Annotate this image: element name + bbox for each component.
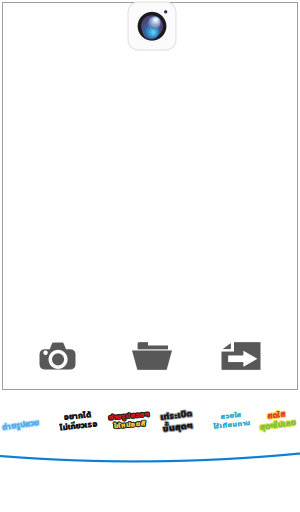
- staticText: สุดๆไปเลย: [258, 420, 294, 432]
- staticText: ให้หน่อยสิ: [113, 418, 145, 429]
- button[interactable]: Take photo: [29, 336, 85, 376]
- staticText: ไร้เทียมทาน: [214, 419, 251, 430]
- staticText: ไร้เทียมทาน: [212, 418, 249, 429]
- staticText: ให้หน่อยสิ: [114, 418, 146, 429]
- staticText: อยากได้: [65, 411, 92, 423]
- staticText: เท่ระเบิด: [160, 407, 192, 421]
- staticText: ไร้เทียมทาน: [214, 420, 251, 431]
- staticText: ไม่เกี่ยวเธอ: [58, 420, 96, 432]
- staticText: เท่ระเบิด: [161, 409, 193, 423]
- staticText: สดใส: [268, 409, 286, 421]
- staticText: ถ่ายรูปสวย: [1, 420, 38, 432]
- staticText: อยากได้: [64, 410, 91, 422]
- staticText: ให้หน่อยสิ: [113, 420, 145, 431]
- staticText: สุดๆไปเลย: [260, 419, 296, 431]
- staticText: ถ่ายรูปสวย: [2, 420, 39, 432]
- staticText: เท่ระเบิด: [160, 408, 192, 422]
- staticText: ให้หน่อยสิ: [113, 420, 145, 431]
- staticText: อยากได้: [64, 409, 91, 421]
- staticText: ให้หน่อยสิ: [113, 418, 145, 429]
- staticText: ขั้นสุดๆ: [163, 420, 193, 434]
- staticText: ถ่ายรูปสวยๆ: [110, 410, 151, 421]
- staticText: สดใส: [268, 408, 286, 420]
- staticText: ถ่ายรูปสวย: [1, 418, 38, 430]
- staticText: เท่ระเบิด: [161, 407, 193, 421]
- staticText: อยากได้: [64, 409, 91, 421]
- button[interactable]: Open album: [124, 336, 180, 376]
- staticText: ถ่ายรูปสวยๆ: [108, 411, 149, 422]
- staticText: สุดๆไปเลย: [258, 419, 294, 431]
- staticText: สุดๆไปเลย: [260, 420, 296, 432]
- staticText: ไร้เทียมทาน: [214, 418, 251, 429]
- staticText: ถ่ายรูปสวย: [3, 418, 40, 430]
- staticText: สุดๆไปเลย: [258, 418, 294, 430]
- staticText: สวยใส: [220, 411, 241, 422]
- staticText: ไร้เทียมทาน: [212, 419, 249, 430]
- staticText: สุดๆไปเลย: [260, 418, 296, 430]
- staticText: ขั้นสุดๆ: [161, 419, 191, 433]
- staticText: ถ่ายรูปสวยๆ: [110, 411, 151, 422]
- staticText: สดใส: [268, 410, 286, 422]
- staticText: สุดๆไปเลย: [259, 420, 295, 432]
- staticText: สวยใส: [221, 411, 242, 422]
- staticText: ไร้เทียมทาน: [212, 420, 249, 431]
- staticText: อยากได้: [64, 411, 91, 423]
- staticText: ไม่เกี่ยวเธอ: [59, 421, 97, 433]
- staticText: ถ่ายรูปสวยๆ: [109, 411, 150, 422]
- staticText: สดใส: [267, 409, 285, 421]
- staticText: ขั้นสุดๆ: [161, 421, 191, 435]
- staticText: ให้หน่อยสิ: [114, 419, 146, 430]
- staticText: ไม่เกี่ยวเธอ: [60, 419, 98, 431]
- staticText: เท่ระเบิด: [160, 409, 192, 423]
- staticText: เท่ระเบิด: [162, 408, 194, 422]
- staticText: ขั้นสุดๆ: [162, 419, 192, 433]
- staticText: ถ่ายรูปสวย: [3, 420, 40, 432]
- staticText: ไร้เทียมทาน: [213, 420, 250, 431]
- staticText: สดใส: [267, 408, 285, 420]
- staticText: เท่ระเบิด: [161, 408, 193, 422]
- staticText: เท่ระเบิด: [162, 409, 194, 423]
- staticText: ให้หน่อยสิ: [113, 419, 145, 430]
- staticText: สวยใส: [222, 410, 243, 421]
- staticText: ไม่เกี่ยวเธอ: [58, 421, 96, 433]
- button[interactable]: Export photo: [213, 336, 269, 376]
- staticText: ถ่ายรูปสวย: [1, 419, 38, 431]
- staticText: ไม่เกี่ยวเธอ: [60, 420, 98, 432]
- staticText: ไม่เกี่ยวเธอ: [60, 421, 98, 433]
- staticText: อยากได้: [64, 411, 91, 423]
- staticText: ถ่ายรูปสวยๆ: [108, 409, 149, 420]
- staticText: สวยใส: [221, 410, 242, 421]
- staticText: ให้หน่อยสิ: [112, 419, 144, 430]
- staticText: สดใส: [269, 409, 287, 421]
- staticText: สวยใส: [222, 409, 243, 420]
- staticText: สวยใส: [222, 411, 243, 422]
- staticText: ไม่เกี่ยวเธอ: [59, 420, 97, 432]
- staticText: สวยใส: [221, 409, 242, 420]
- staticText: สวยใส: [220, 409, 241, 420]
- staticText: ถ่ายรูปสวย: [3, 419, 40, 431]
- staticText: ถ่ายรูปสวยๆ: [108, 410, 149, 421]
- staticText: สวยใส: [220, 410, 241, 421]
- staticText: ถ่ายรูปสวย: [2, 418, 39, 430]
- staticText: ถ่ายรูปสวยๆ: [110, 409, 151, 420]
- staticText: ถ่ายรูปสวย: [2, 419, 39, 431]
- staticText: อยากได้: [65, 409, 92, 421]
- staticText: ขั้นสุดๆ: [163, 421, 193, 435]
- staticText: เท่ระเบิด: [162, 407, 194, 421]
- staticText: ไม่เกี่ยวเธอ: [59, 419, 97, 431]
- staticText: ไม่เกี่ยวเธอ: [58, 419, 96, 431]
- staticText: อยากได้: [63, 410, 90, 422]
- staticText: สดใส: [269, 410, 287, 422]
- staticText: ขั้นสุดๆ: [161, 420, 191, 434]
- staticText: สุดๆไปเลย: [259, 418, 295, 430]
- staticText: ถ่ายรูปสวยๆ: [109, 409, 150, 420]
- staticText: อยากได้: [65, 410, 92, 422]
- staticText: ไร้เทียมทาน: [213, 418, 250, 429]
- staticText: ให้หน่อยสิ: [114, 420, 146, 431]
- staticText: ไร้เทียมทาน: [213, 419, 250, 430]
- staticText: สดใส: [267, 410, 285, 422]
- staticText: สดใส: [269, 408, 287, 420]
- staticText: ขั้นสุดๆ: [163, 419, 193, 433]
- staticText: ถ่ายรูปสวยๆ: [109, 410, 150, 421]
- staticText: ขั้นสุดๆ: [162, 421, 192, 435]
